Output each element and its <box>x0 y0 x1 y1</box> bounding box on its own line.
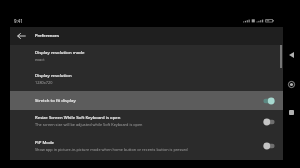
button[interactable]: Switch off <box>261 115 277 129</box>
staticText: The screen size will be adjusted while S… <box>35 122 255 127</box>
staticText: Stretch to fit display <box>35 97 235 103</box>
button[interactable]: Navigate up <box>13 28 29 44</box>
button[interactable]: Stretch to fit display <box>10 91 283 111</box>
button[interactable]: Switch off <box>261 139 277 153</box>
button[interactable]: Back <box>283 46 300 63</box>
staticText: Resize Screen While Soft Keyboard is ope… <box>35 114 235 120</box>
button[interactable]: Resize Screen While Soft Keyboard is ope… <box>10 110 283 134</box>
staticText: exact <box>35 57 255 62</box>
staticText: 9:41 <box>14 18 23 24</box>
button[interactable]: PiP Mode <box>10 135 283 160</box>
button[interactable]: Recent apps <box>283 104 300 121</box>
staticText: Preferences <box>35 32 60 38</box>
staticText: PiP Mode <box>35 139 235 145</box>
staticText: 1280x720 <box>35 80 255 85</box>
button[interactable]: Display resolution mode <box>10 45 283 68</box>
button[interactable]: Switch on <box>261 94 277 108</box>
staticText: Show app in picture-in-picture mode when… <box>35 147 255 152</box>
button[interactable]: Display resolution <box>10 68 283 91</box>
staticText: Display resolution mode <box>35 49 235 55</box>
staticText: Display resolution <box>35 72 235 78</box>
button[interactable]: Home <box>283 76 300 93</box>
